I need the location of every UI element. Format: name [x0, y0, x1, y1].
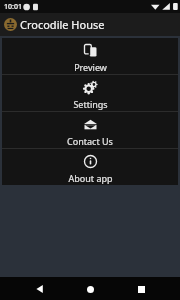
staticText: 10:01 — [4, 2, 22, 12]
staticText: Settings — [73, 98, 108, 110]
other: App icon — [4, 18, 17, 31]
staticText: Contact Us — [67, 135, 113, 147]
staticText: About app — [68, 172, 113, 184]
button[interactable]: Back — [29, 278, 51, 300]
button[interactable]: Settings — [2, 75, 178, 111]
button[interactable]: Contact Us — [2, 112, 178, 148]
button[interactable]: Recent apps — [130, 278, 152, 300]
staticText: Preview — [74, 61, 107, 73]
button[interactable]: About app — [2, 149, 178, 185]
staticText: Crocodile House — [20, 17, 105, 32]
button[interactable]: Preview — [2, 38, 178, 74]
button[interactable]: Home — [79, 278, 101, 300]
